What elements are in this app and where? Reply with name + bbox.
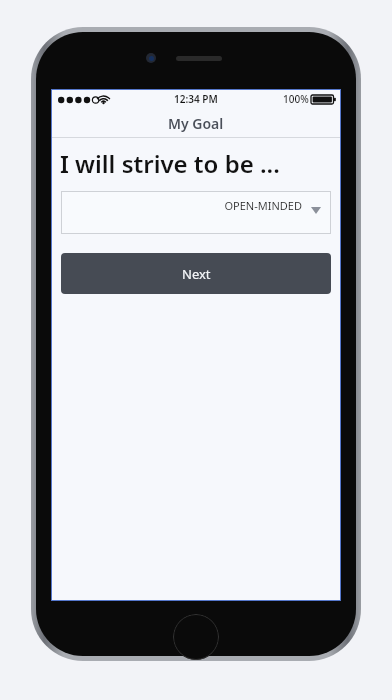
button[interactable]: OPEN-MINDED [61,191,331,234]
staticText: I will strive to be ... [60,147,341,180]
staticText: My Goal [168,114,224,133]
staticText: 12:34 PM [174,92,218,106]
staticText: Next [182,265,211,283]
staticText: OPEN-MINDED [71,198,302,213]
staticText: 100% [283,92,309,106]
button[interactable]: Next [61,253,331,294]
